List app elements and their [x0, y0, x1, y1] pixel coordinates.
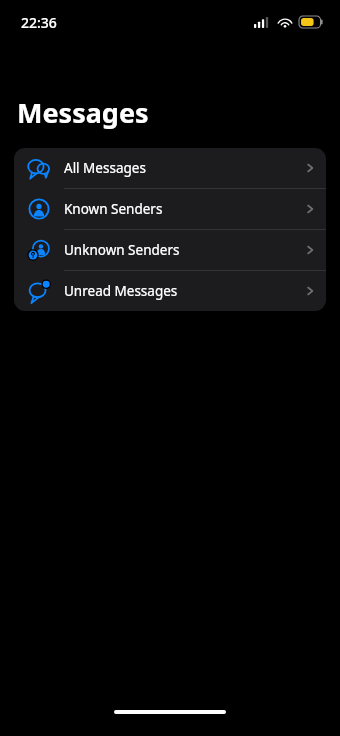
staticText: 22:36 [21, 13, 57, 32]
staticText: Messages [17, 94, 149, 131]
button[interactable]: Unread Messages [14, 271, 326, 311]
staticText: Unread Messages [64, 282, 178, 300]
staticText: All Messages [64, 159, 146, 177]
staticText: Unknown Senders [64, 241, 180, 259]
button[interactable]: Unknown Senders [14, 230, 326, 270]
button[interactable]: Known Senders [14, 189, 326, 229]
staticText: Known Senders [64, 200, 163, 218]
button[interactable]: All Messages [14, 148, 326, 188]
